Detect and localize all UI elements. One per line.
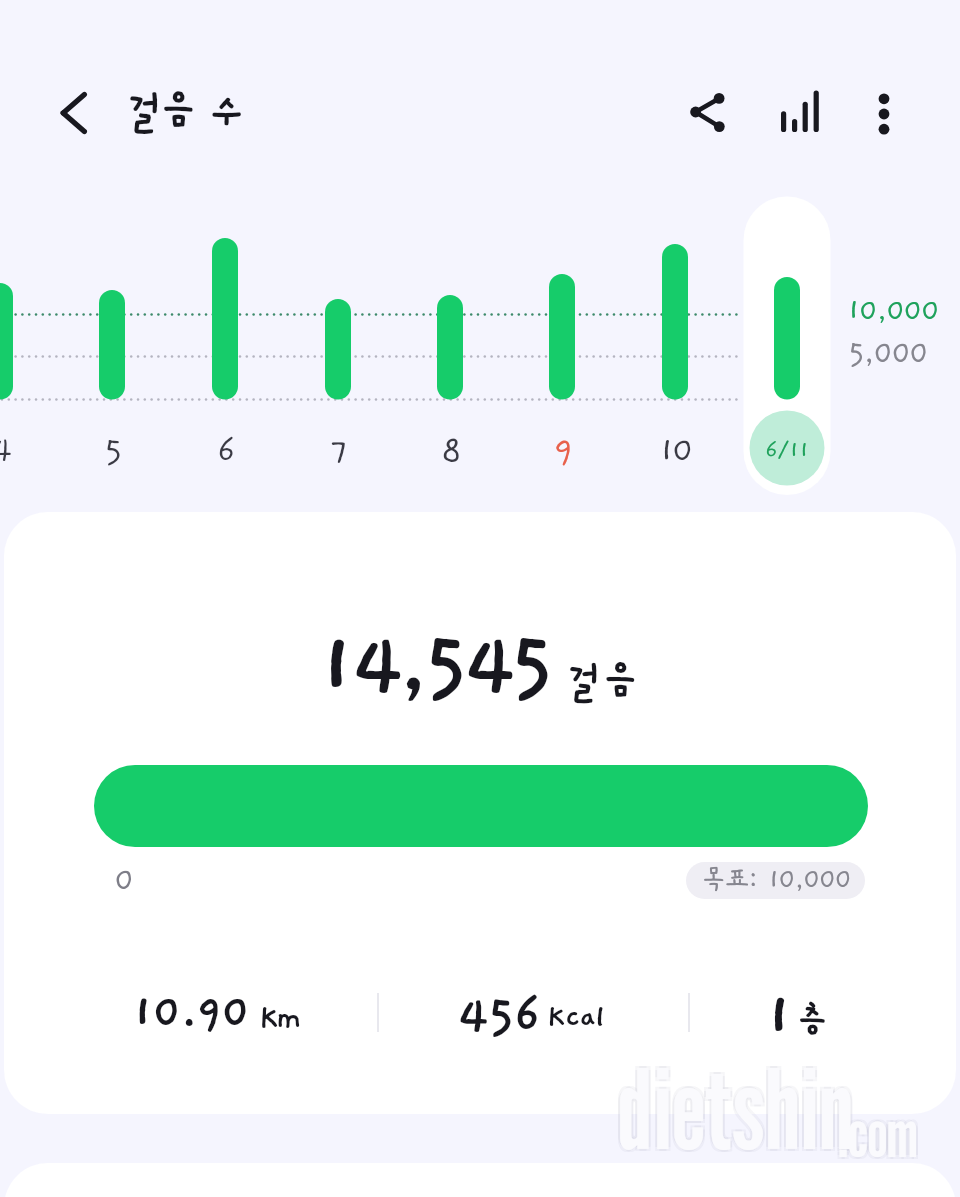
staticText: .com <box>838 1094 918 1172</box>
staticText: 층 <box>796 1002 826 1042</box>
staticText: 10 <box>635 431 715 470</box>
staticText: 10.90 <box>132 986 249 1038</box>
button[interactable]: Back <box>40 77 112 149</box>
staticText: 목표: 10,000 <box>701 864 851 895</box>
staticText: .com <box>836 1096 916 1174</box>
staticText: .com <box>840 1096 920 1174</box>
button[interactable]: 456 <box>431 976 621 1048</box>
button[interactable]: 10.90 <box>106 976 333 1048</box>
staticText: 14,545 <box>317 618 549 714</box>
staticText: 6/11 <box>747 436 827 463</box>
staticText: 5,000 <box>848 336 928 371</box>
button[interactable]: 1 <box>739 976 870 1048</box>
button[interactable]: 4 <box>0 196 44 495</box>
staticText: dietshin <box>620 1042 856 1173</box>
staticText: .com <box>840 1092 920 1170</box>
staticText: 4 <box>0 431 40 470</box>
button[interactable]: 목표: 10,000 <box>686 862 865 899</box>
staticText: 456 <box>457 987 540 1045</box>
button[interactable]: 8 <box>406 196 494 495</box>
button[interactable]: Share <box>673 74 749 150</box>
button[interactable]: 6/11 <box>743 196 831 495</box>
button[interactable]: Chart <box>764 72 840 148</box>
staticText: 1 <box>765 982 795 1050</box>
staticText: 6 <box>185 431 265 470</box>
button[interactable]: 7 <box>294 196 382 495</box>
button[interactable]: 9 <box>518 196 606 495</box>
button[interactable]: 10 <box>631 196 719 495</box>
staticText: dietshin <box>618 1044 854 1175</box>
staticText: 걸음 수 <box>126 88 242 134</box>
staticText: Km <box>259 1001 300 1037</box>
staticText: dietshin <box>620 1046 856 1177</box>
staticText: 0 <box>114 863 135 899</box>
button[interactable]: More options <box>846 76 922 152</box>
staticText: 5 <box>72 431 152 470</box>
button[interactable]: 6 <box>181 196 269 495</box>
staticText: 8 <box>410 431 490 470</box>
button[interactable]: 5 <box>68 196 156 495</box>
staticText: Kcal <box>547 1000 606 1034</box>
button[interactable] <box>94 765 868 847</box>
staticText: 9 <box>522 431 602 470</box>
staticText: dietshin <box>616 1046 852 1177</box>
staticText: .com <box>836 1092 916 1170</box>
staticText: 10,000 <box>847 294 939 328</box>
staticText: dietshin <box>616 1042 852 1173</box>
staticText: 걸음 <box>566 659 638 704</box>
staticText: 7 <box>298 431 378 470</box>
